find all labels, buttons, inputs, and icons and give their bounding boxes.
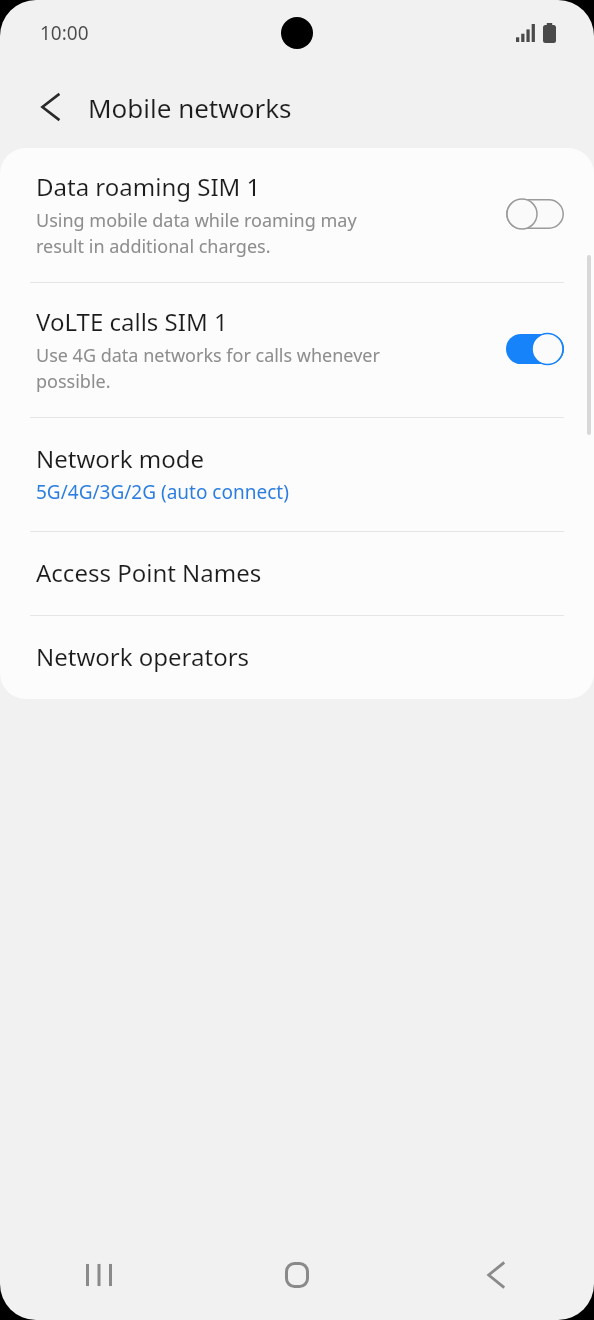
staticText: Use 4G data networks for calls whenever … [36, 343, 380, 393]
button[interactable]: Off [506, 197, 564, 231]
staticText: 10:00 [40, 20, 89, 46]
button[interactable]: VoLTE calls SIM 1 [0, 283, 594, 417]
staticText: Mobile networks [88, 90, 292, 125]
button[interactable]: Data roaming SIM 1 [0, 148, 594, 282]
staticText: Data roaming SIM 1 [36, 170, 261, 203]
staticText: Network operators [36, 640, 250, 673]
button[interactable]: Recent apps [0, 1230, 198, 1320]
staticText: VoLTE calls SIM 1 [36, 305, 228, 338]
staticText: Access Point Names [36, 556, 262, 589]
button[interactable]: Network mode [0, 418, 594, 531]
button[interactable]: Back [24, 81, 76, 133]
staticText: Network mode [36, 442, 205, 475]
button[interactable]: Home [198, 1230, 396, 1320]
staticText: Using mobile data while roaming may resu… [36, 208, 357, 258]
button[interactable]: Access Point Names [0, 532, 594, 615]
staticText: 5G/4G/3G/2G (auto connect) [36, 479, 289, 505]
button[interactable]: Network operators [0, 616, 594, 699]
button[interactable]: Back [396, 1230, 594, 1320]
button[interactable]: On [506, 332, 564, 366]
